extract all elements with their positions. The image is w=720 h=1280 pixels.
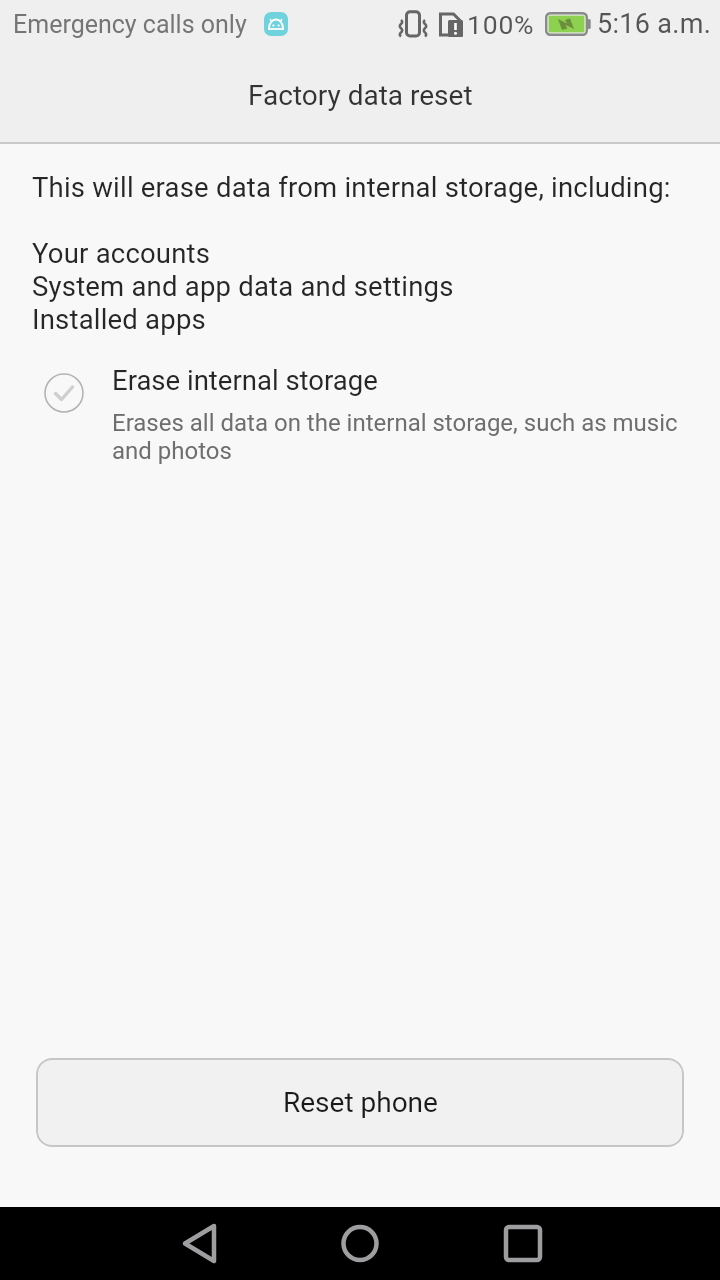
staticText: Reset phone — [283, 1086, 438, 1119]
staticText: This will erase data from internal stora… — [32, 171, 671, 203]
staticText: Factory data reset — [248, 79, 473, 112]
button[interactable] — [496, 1215, 544, 1271]
button[interactable]: Reset phone — [36, 1058, 684, 1147]
staticText: 5:16 a.m. — [597, 8, 712, 40]
staticText: 100% — [467, 9, 535, 40]
staticText: Emergency calls only — [13, 10, 247, 39]
button[interactable] — [336, 1215, 384, 1271]
button[interactable] — [176, 1215, 224, 1271]
button[interactable]: Erase internal storage — [0, 360, 720, 472]
staticText: Erases all data on the internal storage,… — [112, 409, 678, 465]
staticText: Erase internal storage — [112, 364, 378, 396]
staticText: Your accounts System and app data and se… — [32, 237, 454, 335]
